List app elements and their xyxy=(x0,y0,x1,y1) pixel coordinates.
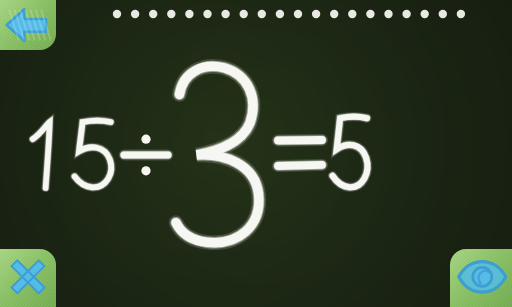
button[interactable]: Clear xyxy=(0,249,56,307)
button[interactable]: Back xyxy=(0,0,56,50)
button[interactable]: Show answer xyxy=(450,249,512,307)
